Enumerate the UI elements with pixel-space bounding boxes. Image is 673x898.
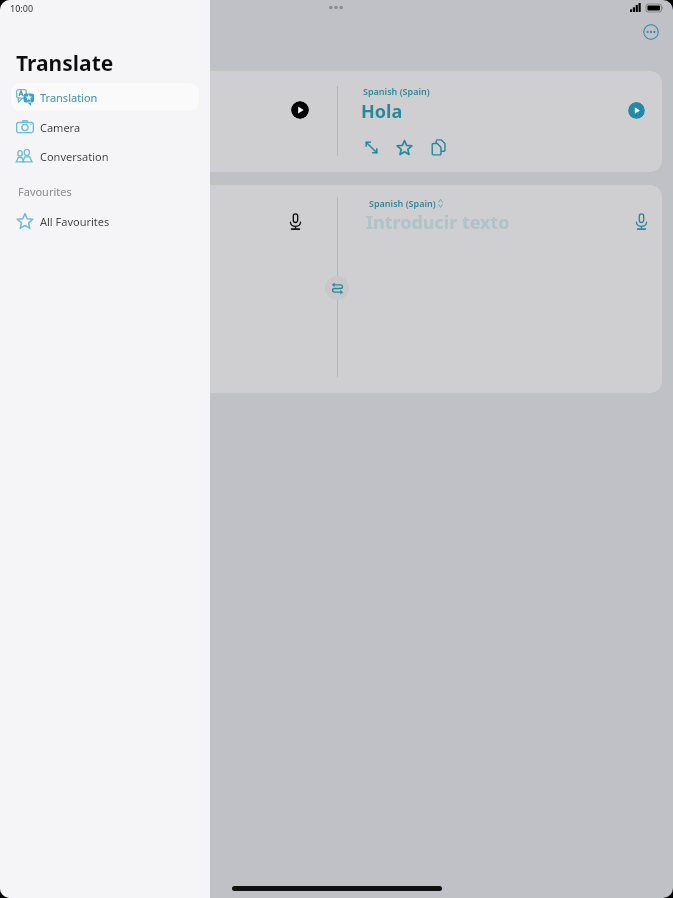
button[interactable]: All Favourites [11, 207, 199, 235]
staticText: Translate [16, 49, 114, 78]
staticText: Spanish (Spain) [363, 85, 430, 97]
button[interactable]: Conversation [11, 142, 199, 170]
button[interactable]: Translation result card [150, 71, 662, 172]
button[interactable]: More options [643, 24, 659, 40]
button[interactable]: Swap languages [325, 276, 349, 300]
button[interactable]: Microphone translation [632, 212, 651, 231]
button[interactable]: Play translation [628, 102, 645, 119]
button[interactable]: Favourite [395, 138, 414, 157]
staticText: Hola [361, 99, 403, 124]
staticText: Spanish (Spain) [369, 197, 436, 209]
staticText: Camera [40, 120, 81, 135]
staticText: Introducir texto [366, 210, 510, 235]
staticText: Translation [40, 90, 98, 105]
button[interactable]: Play original [291, 101, 309, 119]
staticText: Conversation [40, 149, 109, 164]
button[interactable]: Copy [429, 138, 448, 157]
staticText: All Favourites [40, 214, 110, 229]
staticText: Favourites [18, 184, 72, 199]
button[interactable]: Camera [11, 113, 199, 141]
button[interactable]: Translation [11, 83, 199, 111]
button[interactable]: Microphone original [286, 212, 305, 231]
button[interactable]: Enter text card [150, 185, 662, 393]
staticText: 10:00 [10, 2, 34, 14]
button[interactable]: Expand [362, 138, 381, 157]
